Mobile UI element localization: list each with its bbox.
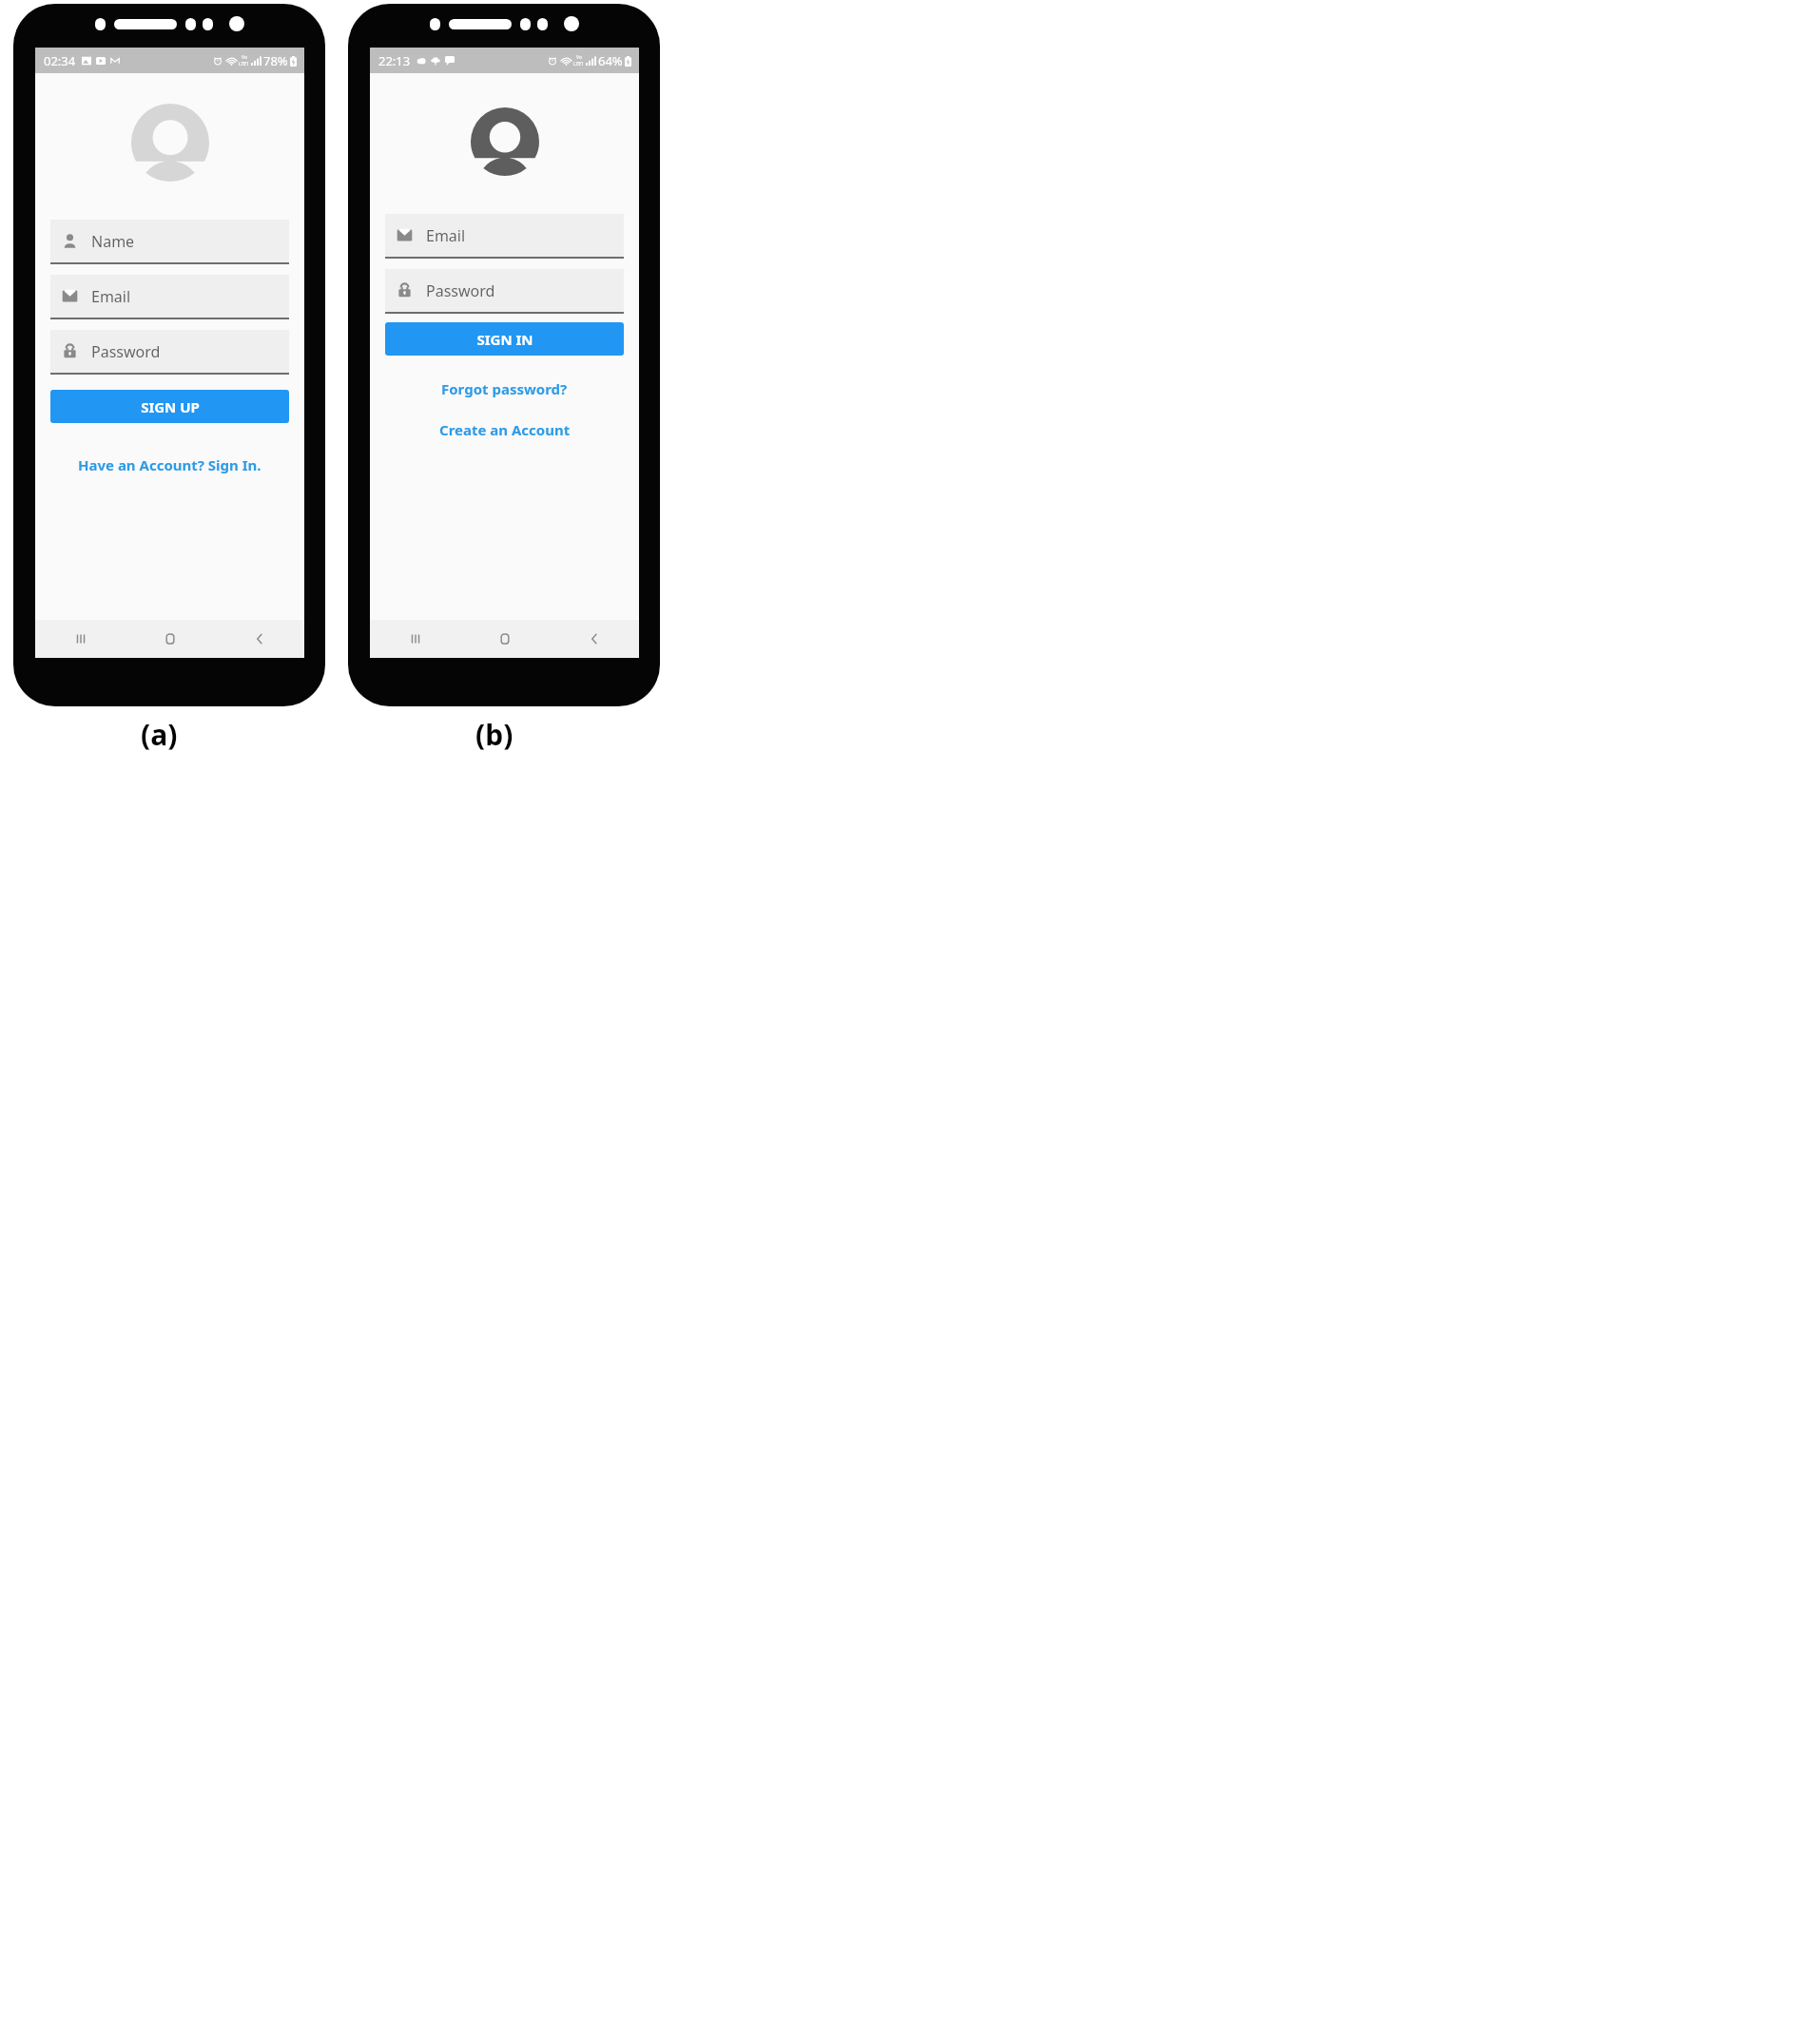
staticText: 78% bbox=[263, 52, 288, 69]
staticText: Create an Account bbox=[439, 420, 571, 439]
button[interactable]: Password bbox=[385, 269, 624, 314]
button[interactable]: Back bbox=[215, 620, 304, 658]
button[interactable]: Have an Account? Sign In. bbox=[72, 453, 267, 477]
button[interactable]: Back bbox=[550, 620, 639, 658]
staticText: Forgot password? bbox=[441, 379, 568, 398]
button[interactable]: Recent apps bbox=[35, 620, 126, 658]
staticText: SIGN IN bbox=[476, 330, 533, 349]
staticText: Have an Account? Sign In. bbox=[78, 455, 262, 474]
staticText: Vo bbox=[242, 54, 247, 61]
staticText: SIGN UP bbox=[141, 397, 200, 416]
staticText: Email bbox=[91, 286, 131, 307]
staticText: Password bbox=[426, 280, 495, 301]
button[interactable]: Email bbox=[50, 275, 289, 319]
staticText: Name bbox=[91, 231, 135, 252]
button[interactable]: Home bbox=[460, 620, 550, 658]
staticText: LTE1 bbox=[573, 61, 584, 67]
button[interactable]: Email bbox=[385, 214, 624, 259]
staticText: 64% bbox=[598, 52, 623, 69]
button[interactable]: Name bbox=[50, 220, 289, 264]
button[interactable]: Password bbox=[50, 330, 289, 375]
staticText: 22:13 bbox=[378, 52, 411, 69]
staticText: (a) bbox=[141, 715, 178, 754]
button[interactable]: Home bbox=[126, 620, 215, 658]
button[interactable]: Recent apps bbox=[370, 620, 460, 658]
staticText: LTE1 bbox=[239, 61, 249, 67]
staticText: Vo bbox=[576, 54, 582, 61]
staticText: 02:34 bbox=[44, 52, 76, 69]
button[interactable]: Create an Account bbox=[434, 417, 576, 442]
button[interactable]: Forgot password? bbox=[436, 376, 573, 401]
staticText: (b) bbox=[475, 715, 513, 754]
button[interactable]: SIGN IN bbox=[385, 322, 624, 356]
staticText: Email bbox=[426, 225, 466, 246]
button[interactable]: SIGN UP bbox=[50, 390, 289, 423]
staticText: Password bbox=[91, 341, 161, 362]
